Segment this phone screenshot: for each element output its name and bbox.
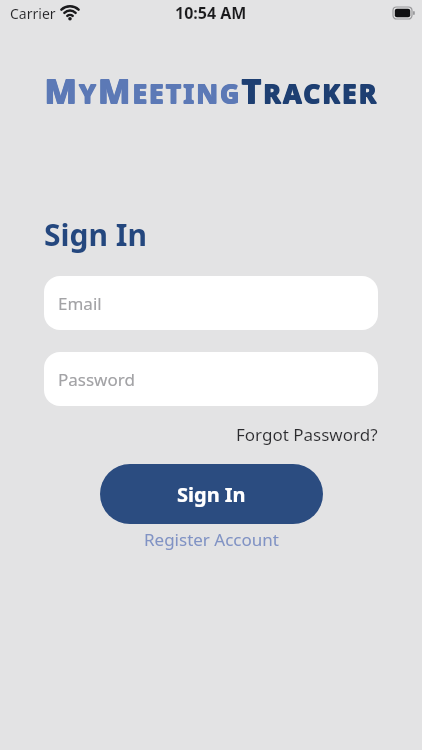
staticText: Sign In <box>177 481 246 508</box>
button[interactable]: Sign In <box>100 464 323 524</box>
staticText: MYMEETINGTRACKER <box>45 67 379 113</box>
staticText: Forgot Password? <box>236 423 378 446</box>
staticText: Sign In <box>44 214 147 255</box>
button[interactable]: Register Account <box>144 528 279 551</box>
button[interactable]: Forgot Password? <box>236 423 378 446</box>
staticText: MYMEETINGTRACKER <box>44 67 378 113</box>
staticText: MYMEETINGTRACKER <box>44 68 378 114</box>
staticText: 10:54 AM <box>175 2 247 24</box>
staticText: Register Account <box>144 528 279 551</box>
staticText: Carrier <box>10 4 56 23</box>
staticText: Password <box>58 368 135 391</box>
button[interactable]: Email <box>44 276 378 330</box>
staticText: Email <box>58 292 102 315</box>
staticText: MYMEETINGTRACKER <box>45 68 379 114</box>
button[interactable]: Password <box>44 352 378 406</box>
